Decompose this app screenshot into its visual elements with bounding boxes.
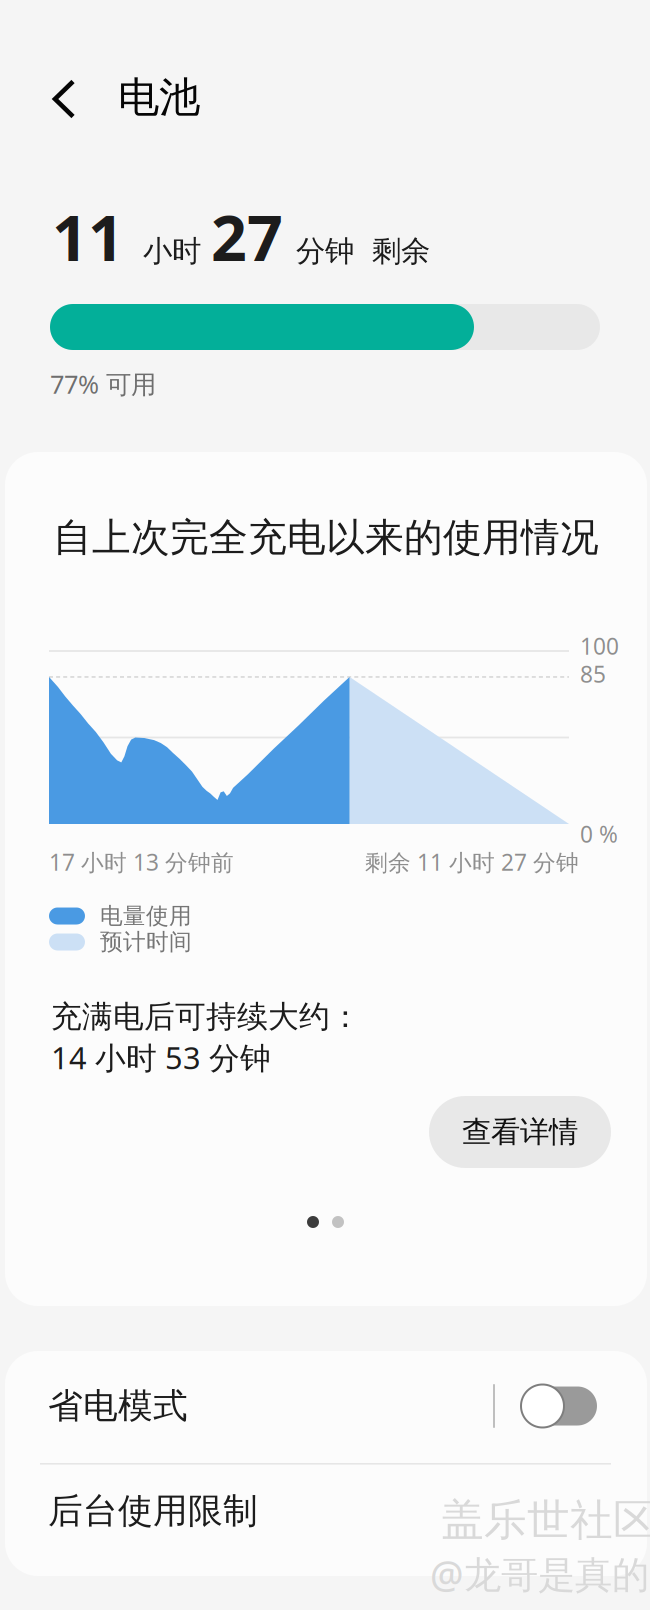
staticText: 充满电后可持续大约： bbox=[51, 998, 361, 1036]
staticText: 后台使用限制 bbox=[48, 1490, 258, 1532]
staticText: 11 bbox=[52, 195, 124, 278]
staticText: 剩余 11 小时 27 分钟 bbox=[365, 847, 579, 877]
button[interactable]: 省电模式 bbox=[16, 1358, 636, 1454]
staticText: 电池 bbox=[118, 72, 200, 123]
staticText: @龙哥是真的 bbox=[430, 1549, 649, 1599]
staticText: 小时 bbox=[143, 233, 201, 269]
button[interactable]: Back bbox=[34, 72, 200, 126]
staticText: 14 小时 53 分钟 bbox=[51, 1037, 271, 1078]
staticText: 0 % bbox=[580, 819, 618, 849]
staticText: 盖乐世社区 bbox=[441, 1494, 650, 1546]
staticText: 100 bbox=[580, 631, 619, 661]
staticText: 省电模式 bbox=[48, 1385, 188, 1427]
staticText: 预计时间 bbox=[100, 928, 192, 956]
staticText: 17 小时 13 分钟前 bbox=[49, 847, 234, 877]
button[interactable]: 后台使用限制 bbox=[48, 1469, 611, 1553]
staticText: 77% 可用 bbox=[50, 367, 156, 401]
staticText: 85 bbox=[580, 659, 606, 689]
staticText: 电量使用 bbox=[100, 902, 192, 930]
button[interactable]: 查看详情 bbox=[429, 1096, 611, 1168]
staticText: 27 bbox=[211, 195, 283, 278]
staticText: 剩余 bbox=[372, 233, 430, 269]
staticText: 自上次完全充电以来的使用情况 bbox=[53, 514, 599, 561]
staticText: 查看详情 bbox=[462, 1114, 578, 1150]
staticText: 分钟 bbox=[296, 233, 354, 269]
